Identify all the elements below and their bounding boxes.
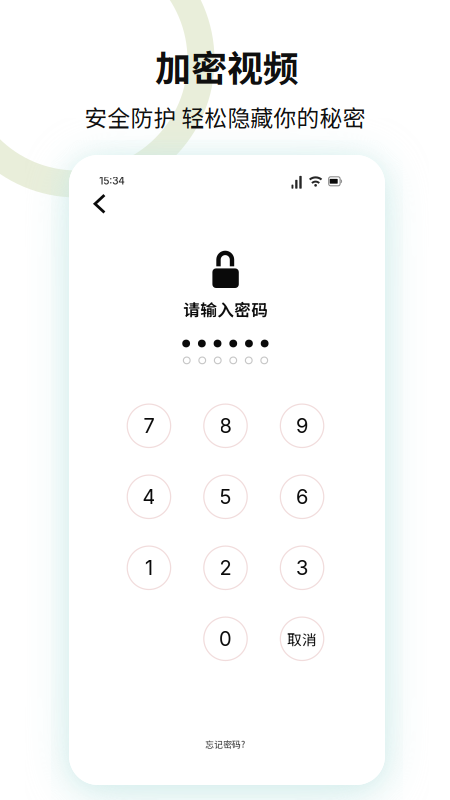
button[interactable]: 7 — [111, 390, 187, 461]
staticText: 15:34 — [99, 175, 125, 187]
button[interactable]: 5 — [187, 461, 264, 532]
staticText: 请输入密码 — [183, 297, 268, 321]
button[interactable]: 6 — [264, 461, 340, 532]
staticText: 4 — [142, 485, 155, 509]
staticText: 安全防护 轻松隐藏你的秘密 — [84, 100, 365, 133]
button[interactable]: 0 — [187, 603, 264, 674]
staticText: 取消 — [287, 628, 317, 649]
staticText: 3 — [296, 556, 308, 580]
staticText: 1 — [145, 556, 153, 580]
staticText: 忘记密码? — [205, 738, 245, 750]
button[interactable]: 2 — [187, 532, 264, 603]
staticText: 7 — [143, 414, 154, 438]
staticText: 9 — [296, 414, 308, 438]
staticText: 5 — [219, 485, 231, 509]
button[interactable]: 9 — [264, 390, 340, 461]
button[interactable]: 忘记密码? — [198, 731, 252, 757]
staticText: 加密视频 — [155, 40, 299, 92]
staticText: 0 — [219, 627, 232, 651]
button[interactable]: 4 — [111, 461, 187, 532]
staticText: 8 — [219, 414, 231, 438]
button[interactable]: 8 — [187, 390, 264, 461]
button[interactable]: Back — [84, 188, 116, 220]
staticText: 6 — [296, 485, 308, 509]
button[interactable]: 3 — [264, 532, 340, 603]
button[interactable]: 取消 — [264, 603, 340, 674]
button[interactable]: 1 — [111, 532, 187, 603]
staticText: 2 — [219, 556, 231, 580]
